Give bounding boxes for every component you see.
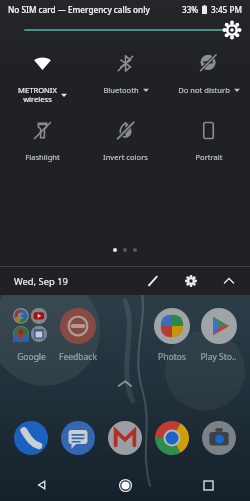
button[interactable]: Settings <box>180 270 202 292</box>
staticText: METRONIX wireless <box>18 85 57 105</box>
button[interactable]: Play Sto.. <box>195 306 242 365</box>
button[interactable]: Brightness <box>0 19 250 41</box>
staticText: Feedback <box>59 351 97 363</box>
staticText: Bluetooth <box>103 85 139 95</box>
staticText: Do not disturb <box>178 85 230 95</box>
button[interactable]: Bluetooth <box>84 52 167 97</box>
button[interactable]: Phone <box>10 417 52 459</box>
button[interactable]: Invert colors <box>84 119 167 164</box>
button[interactable]: Recents <box>167 469 250 501</box>
button[interactable]: Flashlight <box>0 119 84 164</box>
staticText: Play Sto.. <box>200 351 237 363</box>
button[interactable]: Google <box>8 306 54 365</box>
button[interactable]: Gmail <box>104 417 146 459</box>
staticText: Portrait <box>195 152 223 162</box>
staticText: 33% <box>182 4 199 15</box>
button[interactable]: Edit <box>142 270 164 292</box>
button[interactable]: Open app drawer <box>117 379 133 388</box>
button[interactable]: Camera <box>198 417 240 459</box>
button[interactable]: Feedback <box>54 306 101 365</box>
staticText: 3:45 PM <box>211 4 242 15</box>
button[interactable]: METRONIX wireless <box>0 52 84 107</box>
button[interactable]: Back <box>0 469 84 501</box>
staticText: Google <box>17 351 46 363</box>
button[interactable]: Photos <box>148 306 195 365</box>
staticText: Flashlight <box>25 152 60 162</box>
button[interactable]: Portrait <box>167 119 250 164</box>
button[interactable]: Messages <box>57 417 99 459</box>
button[interactable]: Chrome <box>151 417 193 459</box>
button[interactable]: Collapse <box>218 270 240 292</box>
staticText: Invert colors <box>103 152 148 162</box>
button[interactable]: Home <box>84 469 167 501</box>
staticText: Photos <box>158 351 186 363</box>
staticText: Wed, Sep 19 <box>14 275 68 288</box>
staticText: No SIM card — Emergency calls only <box>8 4 150 15</box>
button[interactable]: Do not disturb <box>167 52 250 97</box>
